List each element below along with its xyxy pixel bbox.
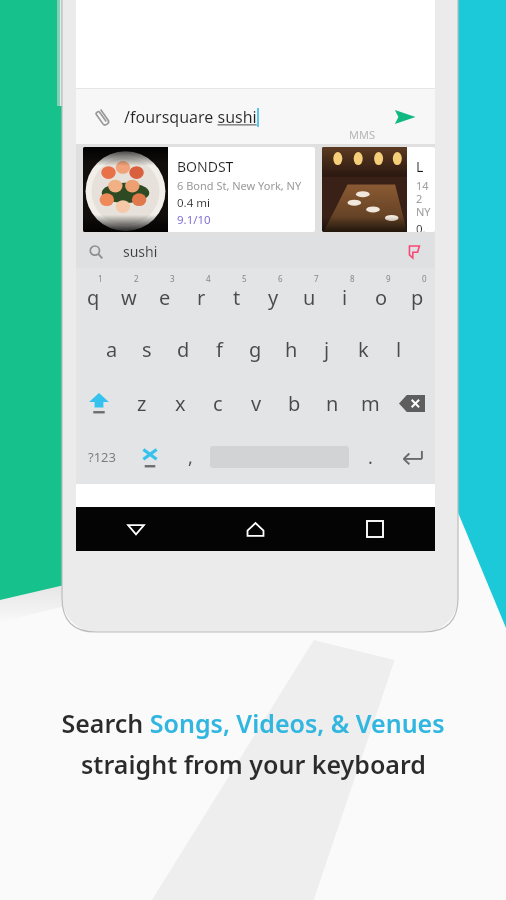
- other: Search: [85, 241, 107, 263]
- button[interactable]: Search: [76, 235, 435, 268]
- staticText: s: [142, 336, 152, 363]
- button[interactable]: Back: [76, 507, 195, 551]
- staticText: 8: [350, 273, 355, 284]
- staticText: v: [251, 390, 262, 417]
- staticText: 1: [98, 273, 103, 284]
- staticText: 5: [242, 273, 247, 284]
- staticText: sushi: [123, 242, 158, 261]
- button[interactable]: 2: [111, 268, 147, 322]
- staticText: l: [396, 336, 402, 363]
- staticText: /foursquare sushi: [124, 106, 257, 128]
- staticText: j: [324, 336, 330, 363]
- staticText: o: [375, 284, 388, 311]
- button[interactable]: Backspace: [389, 376, 435, 430]
- button[interactable]: .: [351, 430, 389, 484]
- button[interactable]: Foursquare: [402, 240, 426, 264]
- staticText: q: [87, 284, 100, 311]
- staticText: 9.1/10: [177, 212, 211, 228]
- button[interactable]: 9: [363, 268, 399, 322]
- button[interactable]: 0: [399, 268, 435, 322]
- staticText: straight from your keyboard: [81, 747, 426, 781]
- staticText: f: [216, 336, 223, 363]
- button[interactable]: 1: [76, 268, 111, 322]
- staticText: 0.4 mi: [177, 195, 210, 211]
- button[interactable]: Home: [195, 507, 315, 551]
- staticText: 0.3: [416, 221, 431, 232]
- staticText: m: [361, 390, 380, 417]
- button[interactable]: h: [273, 322, 309, 376]
- staticText: ,: [188, 445, 193, 470]
- button[interactable]: ,: [172, 430, 208, 484]
- staticText: 6: [278, 273, 283, 284]
- staticText: e: [159, 284, 171, 311]
- button[interactable]: Send: [387, 99, 423, 135]
- button[interactable]: 3: [147, 268, 183, 322]
- staticText: g: [249, 336, 262, 363]
- staticText: 2: [134, 273, 139, 284]
- button[interactable]: z: [122, 376, 161, 430]
- staticText: c: [213, 390, 223, 417]
- button[interactable]: ?123: [76, 430, 128, 484]
- staticText: 142 NY: [416, 178, 431, 219]
- staticText: y: [268, 284, 279, 311]
- staticText: ?123: [88, 448, 116, 466]
- button[interactable]: 7: [291, 268, 327, 322]
- staticText: .: [368, 445, 373, 470]
- staticText: i: [342, 284, 348, 311]
- button[interactable]: 6: [255, 268, 291, 322]
- button[interactable]: k: [345, 322, 381, 376]
- staticText: Lun: [416, 157, 431, 176]
- button[interactable]: b: [275, 376, 313, 430]
- staticText: d: [177, 336, 190, 363]
- button[interactable]: 4: [183, 268, 219, 322]
- staticText: 0: [422, 273, 427, 284]
- button[interactable]: f: [201, 322, 237, 376]
- staticText: u: [303, 284, 316, 311]
- staticText: 6 Bond St, New York, NY: [177, 178, 302, 193]
- button[interactable]: s: [129, 322, 165, 376]
- button[interactable]: l: [381, 322, 417, 376]
- button[interactable]: 8: [327, 268, 363, 322]
- button[interactable]: Recents: [315, 507, 435, 551]
- staticText: h: [285, 336, 298, 363]
- staticText: 4: [206, 273, 211, 284]
- button[interactable]: Lun: [322, 147, 435, 232]
- button[interactable]: Search key: [128, 430, 172, 484]
- button[interactable]: BONDST: [83, 147, 315, 232]
- staticText: 3: [170, 273, 175, 284]
- button[interactable]: a: [94, 322, 129, 376]
- button[interactable]: n: [313, 376, 351, 430]
- button[interactable]: c: [199, 376, 237, 430]
- staticText: k: [358, 336, 369, 363]
- button[interactable]: Shift: [76, 376, 122, 430]
- button[interactable]: v: [237, 376, 275, 430]
- staticText: z: [137, 390, 147, 417]
- button[interactable]: x: [161, 376, 199, 430]
- staticText: MMS: [349, 127, 375, 142]
- staticText: 7: [314, 273, 319, 284]
- button[interactable]: Enter: [389, 430, 435, 484]
- button[interactable]: g: [237, 322, 273, 376]
- button[interactable]: j: [309, 322, 345, 376]
- staticText: a: [106, 336, 118, 363]
- button[interactable]: m: [351, 376, 389, 430]
- button[interactable]: d: [165, 322, 201, 376]
- staticText: t: [233, 284, 241, 311]
- staticText: x: [175, 390, 186, 417]
- button[interactable]: 5: [219, 268, 255, 322]
- staticText: 9: [386, 273, 391, 284]
- staticText: w: [121, 284, 137, 311]
- staticText: n: [326, 390, 339, 417]
- staticText: r: [197, 284, 206, 311]
- staticText: b: [288, 390, 301, 417]
- staticText: p: [411, 284, 424, 311]
- staticText: BONDST: [177, 157, 234, 176]
- button[interactable]: Attach: [88, 102, 118, 132]
- staticText: Search Songs, Videos, & Venues: [61, 706, 445, 740]
